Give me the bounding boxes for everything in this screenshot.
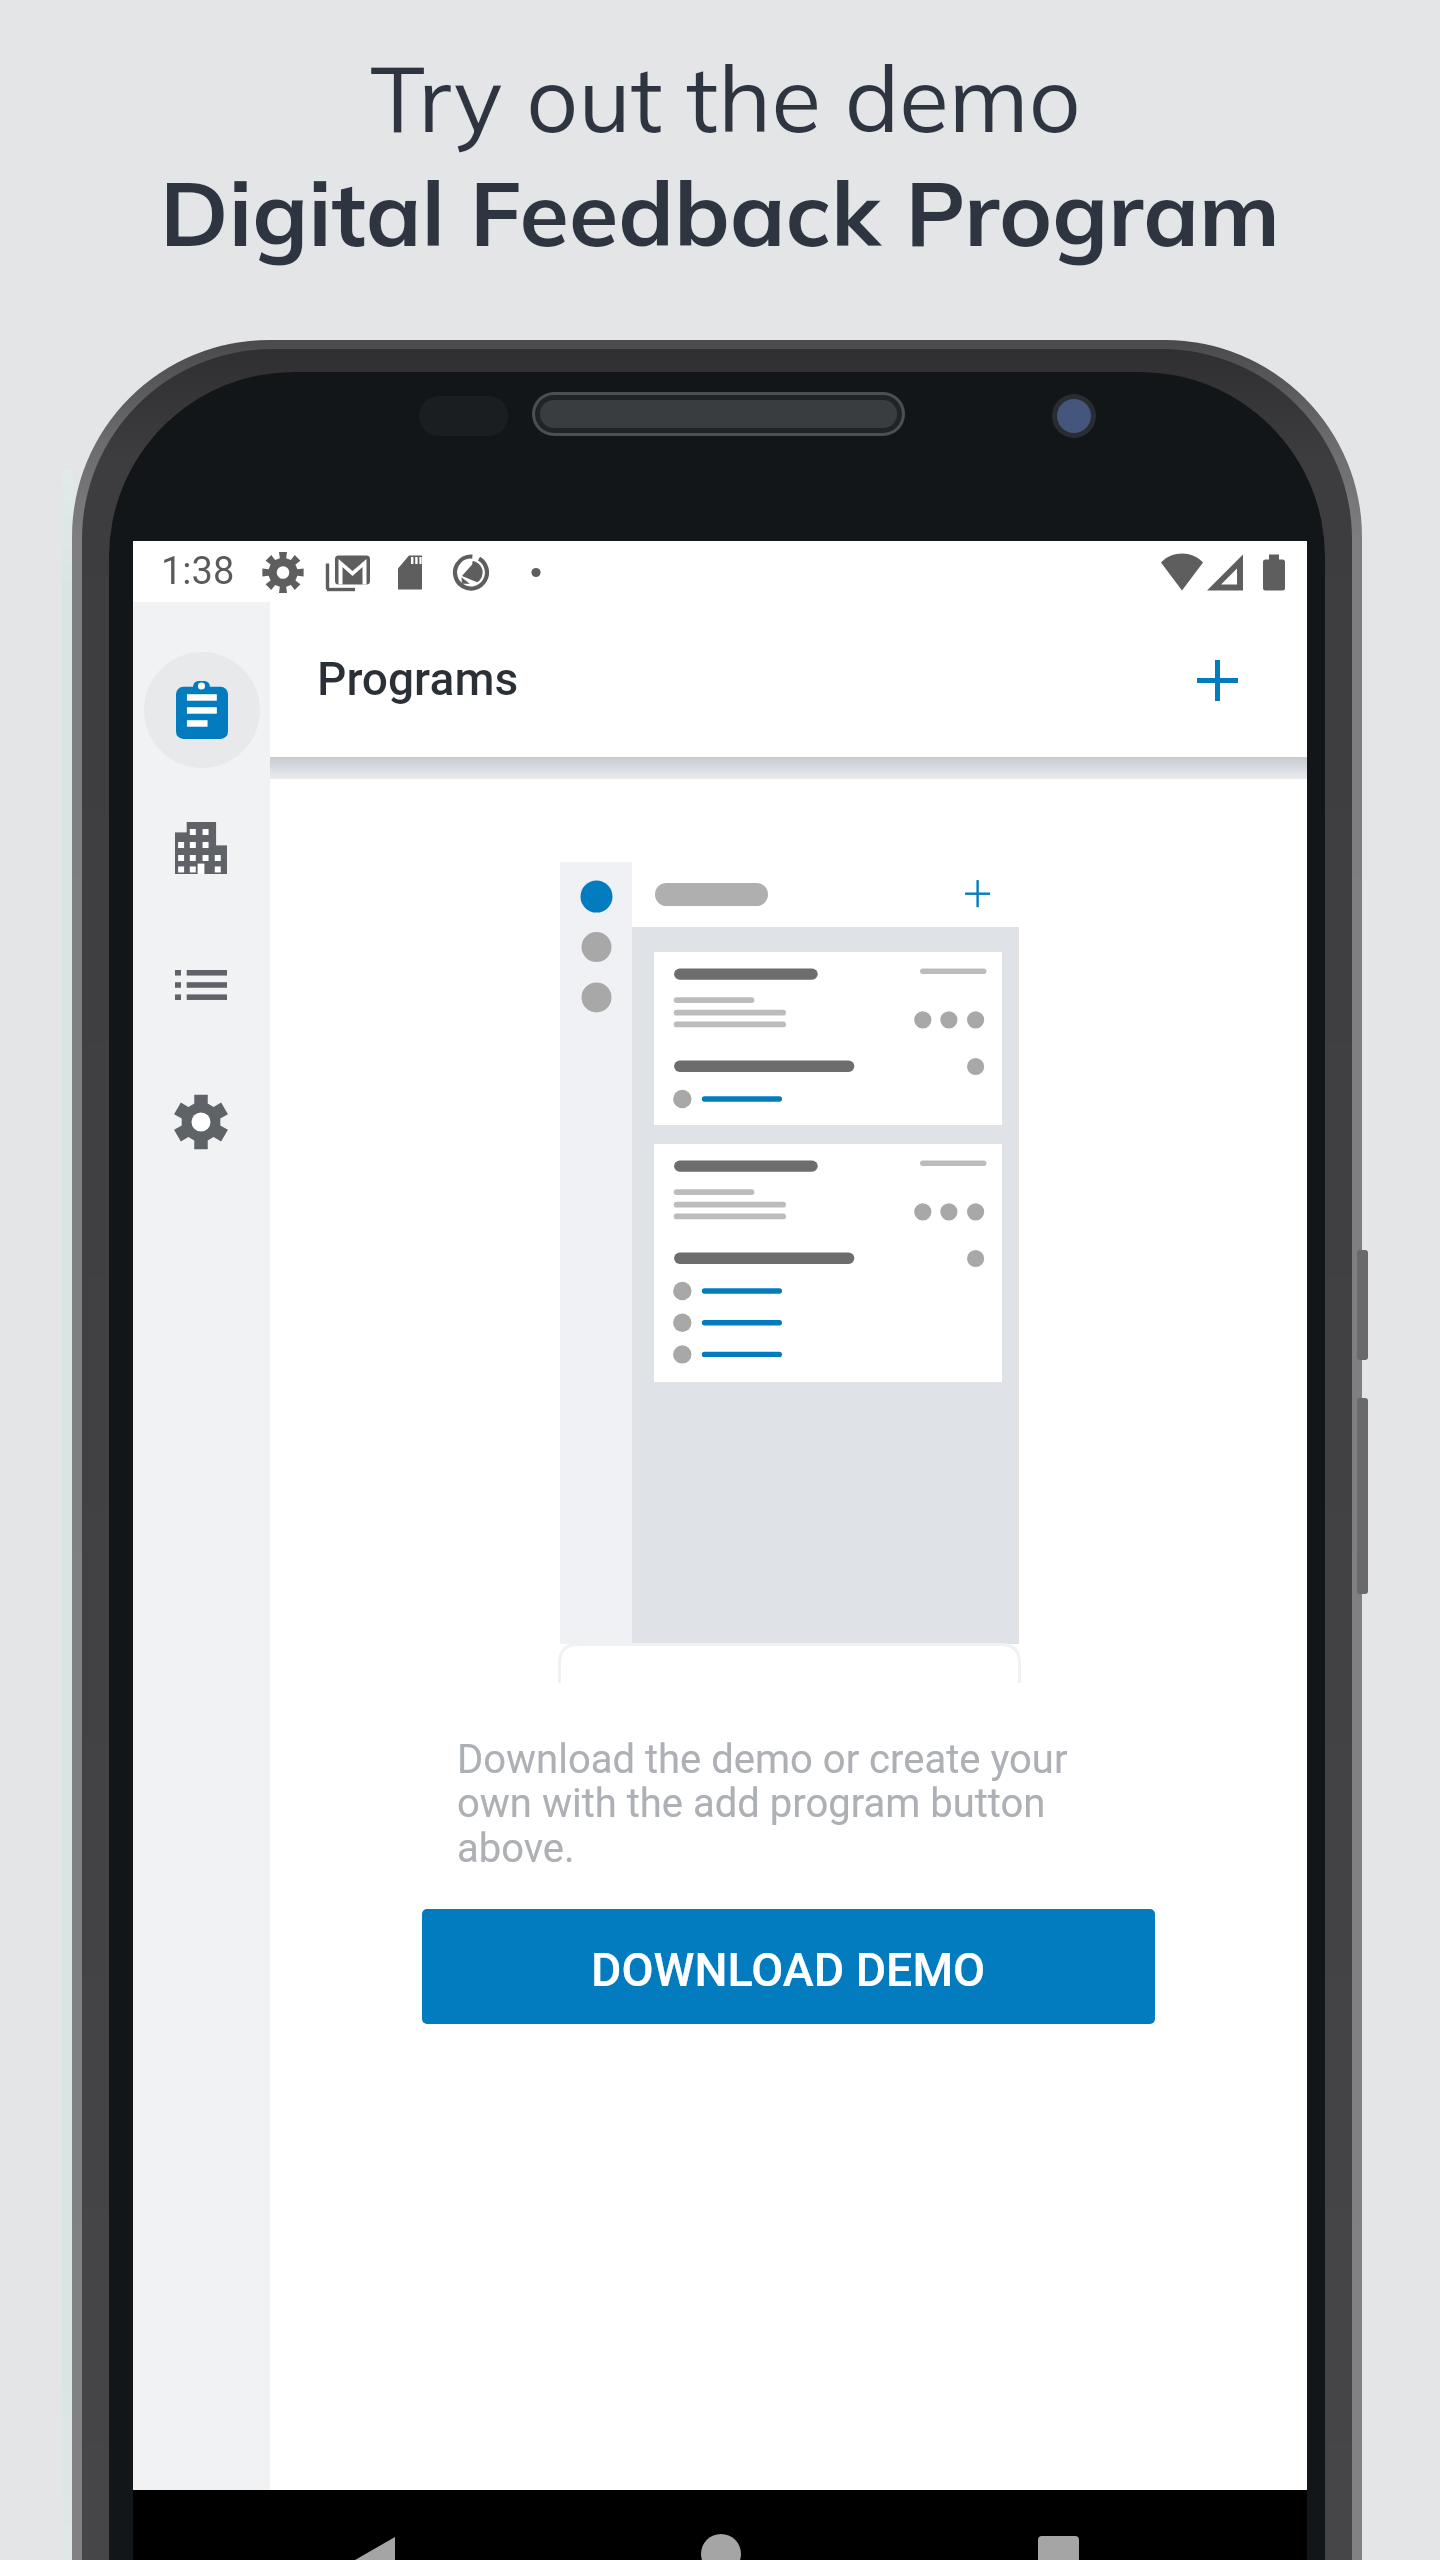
button[interactable]: Recent apps	[998, 2490, 1118, 2560]
staticText: Download the demo or create your own wit…	[457, 1736, 1107, 1872]
button[interactable]: Settings	[145, 1066, 256, 1177]
button[interactable]: Organisations	[145, 792, 256, 903]
button[interactable]: Home	[661, 2490, 781, 2560]
button[interactable]: Programs	[144, 652, 260, 768]
button[interactable]: Back	[315, 2490, 435, 2560]
staticText: Try out the demo	[370, 41, 1081, 155]
button[interactable]: Lists	[145, 929, 256, 1040]
staticText: Digital Feedback Program	[160, 156, 1280, 269]
staticText: 1:38	[161, 549, 235, 594]
staticText: DOWNLOAD DEMO	[591, 1943, 986, 1997]
button[interactable]: DOWNLOAD DEMO	[422, 1909, 1155, 2024]
button[interactable]: Add program	[1165, 628, 1269, 732]
staticText: Programs	[317, 652, 519, 706]
